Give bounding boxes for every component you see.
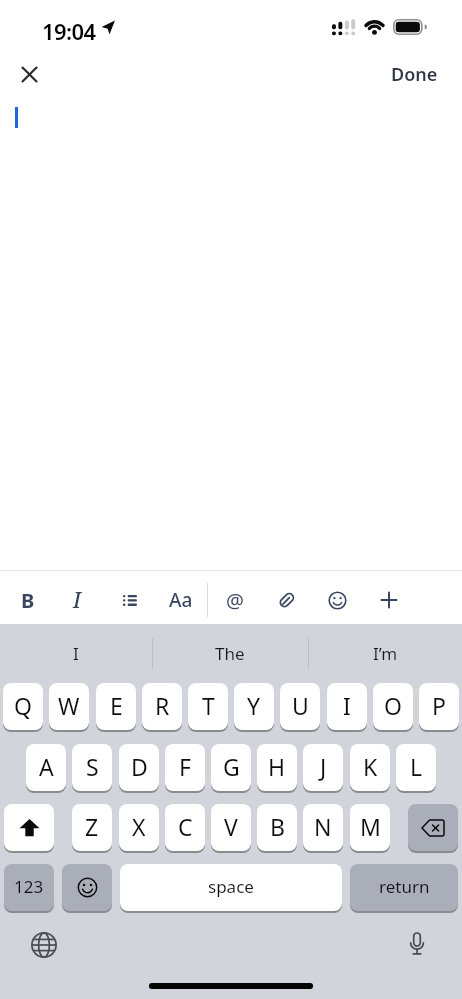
button[interactable] <box>8 53 50 95</box>
button[interactable]: L <box>396 744 436 793</box>
staticText: I’m <box>373 642 398 665</box>
button[interactable]: I <box>0 625 152 682</box>
button[interactable]: @ <box>213 578 257 622</box>
button[interactable] <box>367 578 411 622</box>
staticText: return <box>379 875 430 898</box>
staticText: W <box>58 690 80 721</box>
button[interactable]: Z <box>72 804 112 853</box>
button[interactable]: P <box>419 683 459 732</box>
staticText: N <box>314 811 332 842</box>
button[interactable] <box>26 927 62 963</box>
button[interactable]: G <box>211 744 251 793</box>
button[interactable]: A <box>26 744 66 793</box>
button[interactable]: N <box>303 804 343 853</box>
staticText: Aa <box>169 587 193 613</box>
button[interactable]: W <box>49 683 89 732</box>
button[interactable] <box>4 804 54 853</box>
staticText: S <box>86 751 99 782</box>
staticText: L <box>410 751 423 782</box>
button[interactable]: Aa <box>159 578 203 622</box>
button[interactable]: I <box>327 683 367 732</box>
staticText: B <box>270 811 285 842</box>
staticText: Q <box>14 690 32 721</box>
staticText: E <box>110 690 123 721</box>
button[interactable]: H <box>257 744 297 793</box>
button[interactable]: B <box>257 804 297 853</box>
staticText: Z <box>85 811 99 842</box>
button[interactable]: R <box>142 683 182 732</box>
staticText: V <box>224 811 238 842</box>
staticText: space <box>208 875 254 898</box>
button[interactable]: O <box>373 683 413 732</box>
staticText: J <box>320 751 327 782</box>
staticText: O <box>384 690 402 721</box>
staticText: D <box>131 751 148 782</box>
staticText: Y <box>247 690 261 721</box>
button[interactable] <box>62 864 112 913</box>
staticText: G <box>223 751 240 782</box>
staticText: P <box>432 690 446 721</box>
button[interactable]: Y <box>234 683 274 732</box>
staticText: T <box>202 690 215 721</box>
staticText: A <box>39 751 54 782</box>
button[interactable]: T <box>188 683 228 732</box>
button[interactable] <box>408 804 458 853</box>
button[interactable]: Q <box>3 683 43 732</box>
staticText: U <box>292 690 309 721</box>
button[interactable]: U <box>280 683 320 732</box>
button[interactable] <box>108 578 152 622</box>
staticText: The <box>215 642 245 665</box>
staticText: I <box>73 586 81 615</box>
button[interactable]: I’m <box>308 625 462 682</box>
button[interactable]: 123 <box>4 864 54 913</box>
staticText: F <box>179 751 191 782</box>
button[interactable]: E <box>96 683 136 732</box>
button[interactable] <box>264 578 308 622</box>
button[interactable]: C <box>165 804 205 853</box>
button[interactable] <box>315 578 359 622</box>
staticText: @ <box>226 587 244 614</box>
button[interactable]: B <box>6 578 50 622</box>
button[interactable]: Done <box>384 56 444 92</box>
staticText: H <box>268 751 286 782</box>
staticText: K <box>363 751 378 782</box>
button[interactable]: J <box>303 744 343 793</box>
staticText: B <box>21 587 35 614</box>
staticText: M <box>360 811 381 842</box>
staticText: I <box>343 690 351 721</box>
staticText: 19:04 <box>42 16 96 46</box>
button[interactable]: S <box>72 744 112 793</box>
button[interactable]: V <box>211 804 251 853</box>
staticText: I <box>73 642 79 665</box>
button[interactable]: M <box>350 804 390 853</box>
staticText: R <box>155 690 170 721</box>
button[interactable] <box>399 927 435 963</box>
button[interactable]: K <box>350 744 390 793</box>
staticText: Done <box>391 62 438 87</box>
button[interactable]: The <box>152 625 308 682</box>
button[interactable]: I <box>55 578 99 622</box>
button[interactable]: X <box>119 804 159 853</box>
button[interactable]: return <box>350 864 458 913</box>
staticText: C <box>178 811 193 842</box>
button[interactable]: space <box>120 864 342 913</box>
staticText: X <box>132 811 146 842</box>
staticText: 123 <box>14 875 44 898</box>
button[interactable]: F <box>165 744 205 793</box>
button[interactable]: D <box>119 744 159 793</box>
